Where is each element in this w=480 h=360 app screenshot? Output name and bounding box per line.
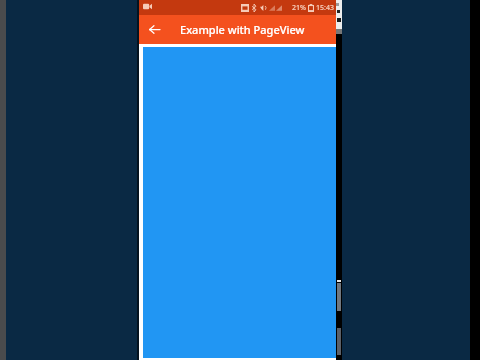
button[interactable]: Back [139, 15, 168, 44]
staticText: 21% [292, 3, 306, 13]
staticText: Example with PageView [180, 22, 305, 37]
staticText: 15:43 [316, 3, 334, 13]
